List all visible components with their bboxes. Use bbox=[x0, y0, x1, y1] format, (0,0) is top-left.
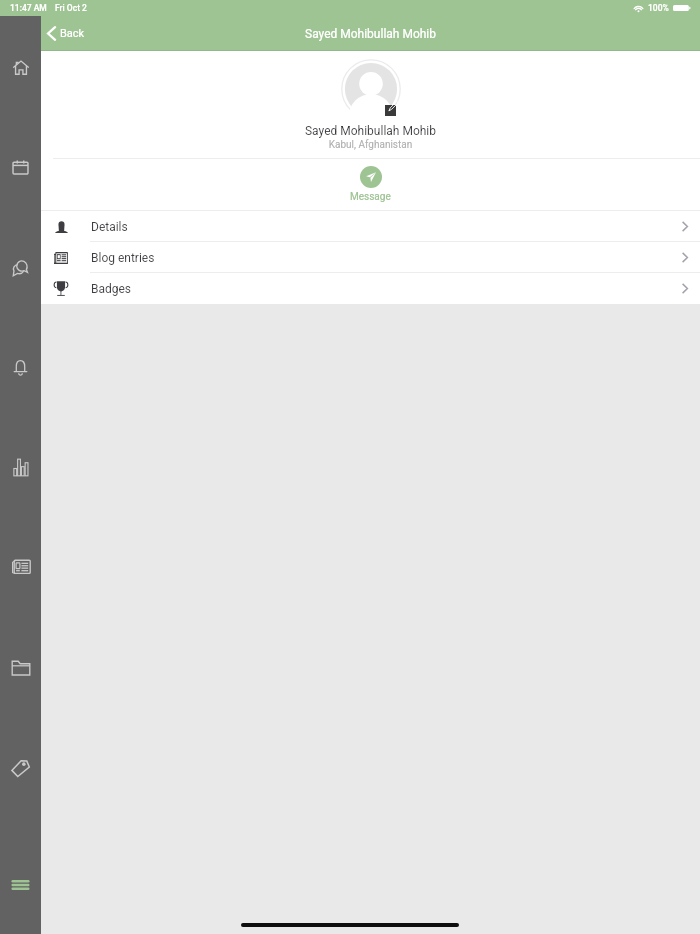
button[interactable]: Calendar bbox=[0, 159, 41, 259]
button[interactable]: Tags bbox=[0, 759, 41, 859]
button[interactable]: Notifications bbox=[0, 359, 41, 459]
button[interactable]: Menu bbox=[0, 880, 41, 934]
staticText: Message bbox=[350, 191, 391, 203]
button[interactable]: Statistics bbox=[0, 459, 41, 559]
button[interactable]: Messages bbox=[0, 259, 41, 359]
button[interactable]: News bbox=[0, 559, 41, 659]
button[interactable] bbox=[341, 59, 401, 119]
staticText: Badges bbox=[91, 282, 132, 296]
staticText: Sayed Mohibullah Mohib bbox=[41, 124, 700, 138]
button[interactable]: Blog entries bbox=[41, 242, 700, 273]
button[interactable]: Back bbox=[47, 16, 85, 51]
staticText: Fri Oct 2 bbox=[55, 3, 87, 13]
staticText: 100% bbox=[648, 3, 669, 13]
staticText: 11:47 AM bbox=[10, 3, 47, 13]
staticText: Blog entries bbox=[91, 251, 155, 265]
staticText: Back bbox=[60, 27, 85, 40]
button[interactable]: Details bbox=[41, 211, 700, 242]
staticText: Details bbox=[91, 220, 128, 234]
button[interactable]: Badges bbox=[41, 273, 700, 304]
button[interactable]: Home bbox=[0, 59, 41, 159]
button[interactable]: Files bbox=[0, 659, 41, 759]
button[interactable]: Message bbox=[41, 159, 700, 203]
staticText: Kabul, Afghanistan bbox=[41, 139, 700, 151]
staticText: Sayed Mohibullah Mohib bbox=[305, 27, 437, 41]
